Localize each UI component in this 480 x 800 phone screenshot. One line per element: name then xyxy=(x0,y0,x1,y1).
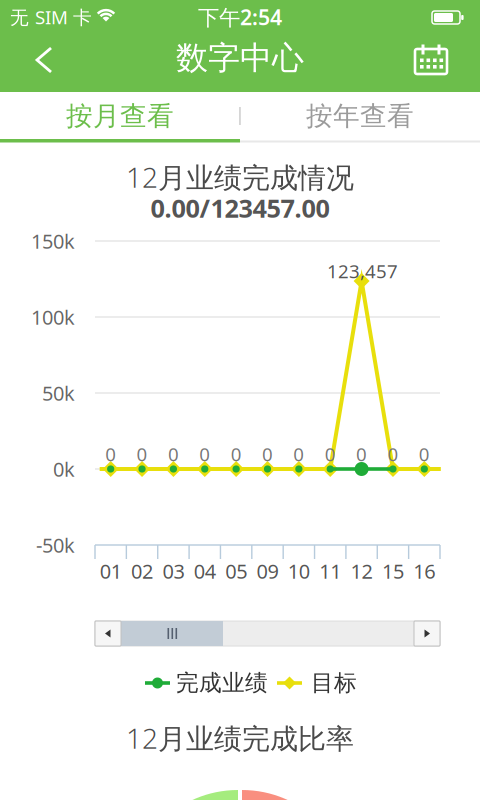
staticText: 02 xyxy=(131,558,153,584)
staticText: 0 xyxy=(168,442,179,466)
staticText: 0 xyxy=(293,442,304,466)
staticText: 05 xyxy=(225,558,247,584)
staticText: 无 SIM 卡 xyxy=(10,5,92,29)
button[interactable] xyxy=(404,40,464,92)
staticText: 50k xyxy=(42,380,75,406)
staticText: 0 xyxy=(199,442,210,466)
staticText: 下午2:54 xyxy=(198,3,282,31)
staticText: 01 xyxy=(100,558,122,584)
button[interactable]: 完成业绩 xyxy=(145,671,268,695)
staticText: 数字中心 xyxy=(176,38,304,78)
staticText: 03 xyxy=(162,558,184,584)
staticText: 0 xyxy=(262,442,273,466)
staticText: 04 xyxy=(194,558,216,584)
button[interactable]: 目标 xyxy=(277,671,357,695)
staticText: 0 xyxy=(356,442,367,466)
staticText: 16 xyxy=(413,558,435,584)
staticText: 完成业绩 xyxy=(176,669,268,697)
staticText: 0k xyxy=(53,456,75,482)
staticText: 0 xyxy=(231,442,242,466)
staticText: -50k xyxy=(36,532,75,558)
staticText: 0 xyxy=(325,442,336,466)
staticText: 0 xyxy=(105,442,116,466)
staticText: 按年查看 xyxy=(306,100,414,132)
staticText: 12月业绩完成比率 xyxy=(126,719,354,757)
staticText: 123,457 xyxy=(327,259,398,283)
button[interactable]: 按月查看 xyxy=(0,92,240,143)
staticText: 12 xyxy=(351,558,373,584)
staticText: 100k xyxy=(31,304,75,330)
staticText: 150k xyxy=(31,228,75,254)
staticText: 10 xyxy=(288,558,310,584)
staticText: 目标 xyxy=(311,669,357,697)
button[interactable] xyxy=(0,40,64,92)
staticText: 按月查看 xyxy=(66,100,174,132)
staticText: 0 xyxy=(387,442,398,466)
button[interactable] xyxy=(95,621,121,646)
button[interactable] xyxy=(414,621,440,646)
button[interactable]: 按年查看 xyxy=(240,92,480,143)
staticText: 0 xyxy=(419,442,430,466)
staticText: 09 xyxy=(256,558,278,584)
staticText: 15 xyxy=(382,558,404,584)
staticText: 11 xyxy=(319,558,341,584)
staticText: 0 xyxy=(136,442,147,466)
staticText: 12月业绩完成情况 xyxy=(126,158,354,196)
staticText: 0.00/123457.00 xyxy=(150,191,329,225)
